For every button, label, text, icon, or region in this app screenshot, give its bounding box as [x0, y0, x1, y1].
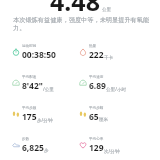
button[interactable]: Average speed — [67, 70, 160, 96]
staticText: 222 — [89, 49, 104, 61]
staticText: 千卡 — [104, 55, 114, 61]
button[interactable]: Calories — [67, 39, 160, 65]
staticText: 65 — [89, 111, 99, 123]
staticText: 平均心率 — [89, 137, 104, 142]
staticText: /公里 — [43, 86, 54, 92]
staticText: 8'42" — [22, 80, 43, 92]
button[interactable]: Duration — [0, 39, 67, 65]
staticText: 6.89 — [89, 80, 106, 92]
staticText: 本次锻炼有益健康，强度中等，未明显提升有氧能力。 — [13, 16, 154, 32]
staticText: 次/分钟 — [104, 148, 120, 154]
button[interactable]: Average stride — [67, 101, 160, 127]
staticText: 平均速度 — [89, 75, 104, 80]
staticText: 4.48 — [50, 0, 100, 18]
button[interactable]: Average cadence — [0, 101, 67, 127]
staticText: 平均步频 — [22, 106, 37, 111]
staticText: 175 — [22, 111, 37, 123]
staticText: 6,825 — [22, 142, 44, 154]
button[interactable]: Average heart rate — [67, 132, 160, 158]
staticText: 129 — [89, 142, 104, 154]
staticText: 厘米 — [99, 117, 109, 123]
staticText: 公里 — [102, 7, 111, 13]
staticText: 步 — [44, 148, 49, 154]
staticText: 运动时间 — [22, 44, 37, 49]
staticText: 热量 — [89, 44, 97, 49]
staticText: 步/分钟 — [37, 117, 53, 123]
staticText: 00:38:50 — [22, 49, 56, 61]
staticText: 步数 — [22, 137, 30, 142]
button[interactable]: Average pace — [0, 70, 67, 96]
staticText: 平均步幅 — [89, 106, 104, 111]
staticText: 公里/小时 — [106, 86, 127, 92]
button[interactable]: Steps — [0, 132, 67, 158]
staticText: 平均配速 — [22, 75, 37, 80]
